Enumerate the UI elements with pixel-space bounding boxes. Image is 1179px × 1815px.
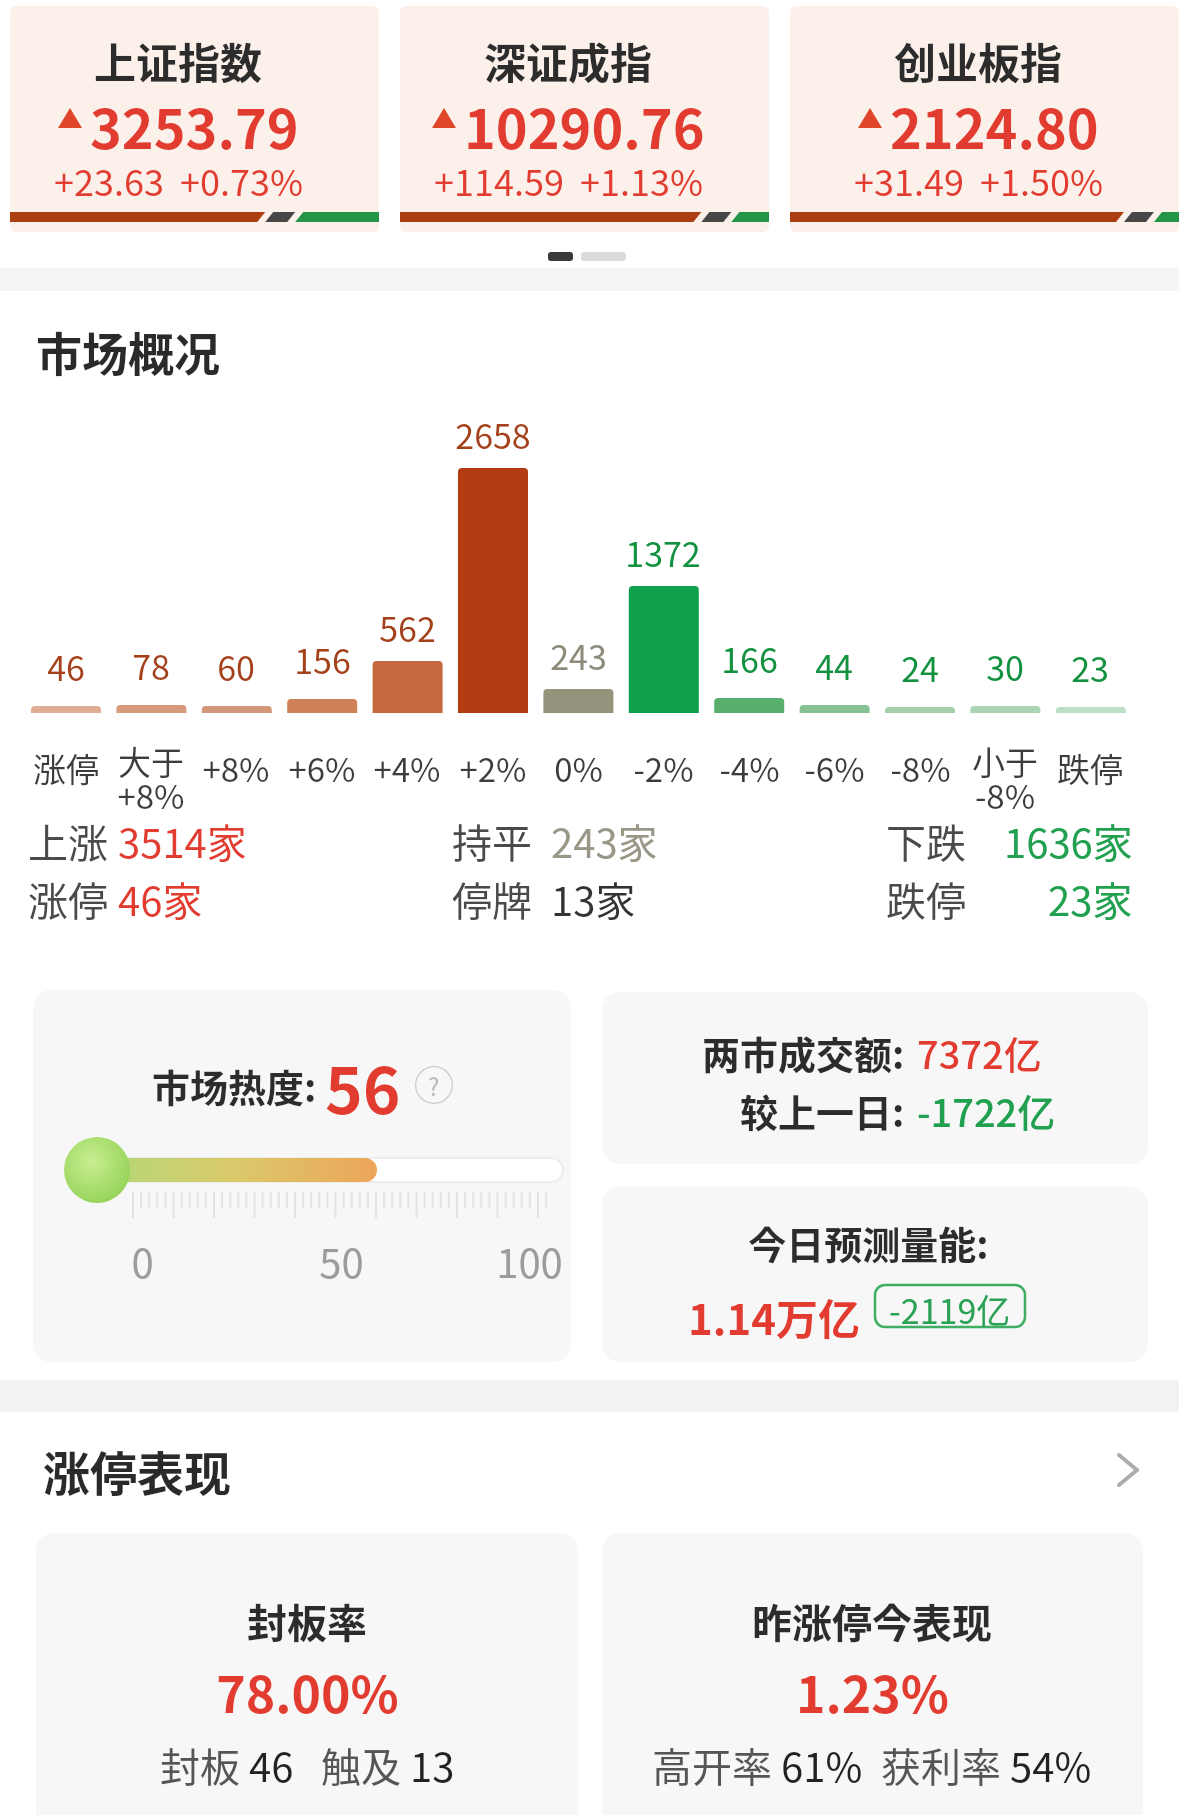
staticText: 1372: [625, 528, 701, 577]
staticText: 2658: [455, 410, 531, 459]
staticText: 2124.80: [890, 86, 1099, 150]
staticText: ?: [428, 1068, 440, 1103]
button[interactable]: 市场热度:: [33, 990, 571, 1362]
staticText: +4%: [373, 744, 441, 792]
staticText: -6%: [804, 744, 865, 792]
staticText: 今日预测量能:: [748, 1215, 989, 1270]
staticText: 1636家: [1004, 812, 1133, 870]
staticText: 0%: [554, 744, 603, 792]
staticText: 两市成交额:: [702, 1025, 905, 1080]
staticText: 3253.79: [90, 86, 299, 150]
staticText: 562: [379, 603, 436, 652]
staticText: 7372亿: [917, 1025, 1042, 1080]
staticText: 30: [986, 642, 1024, 691]
staticText: 0: [131, 1232, 154, 1290]
button[interactable]: [602, 1533, 1143, 1815]
staticText: 3514家: [118, 812, 247, 870]
staticText: 13家: [551, 870, 636, 928]
staticText: 24: [901, 643, 939, 692]
button[interactable]: [602, 1187, 1148, 1362]
staticText: 跌停: [886, 870, 966, 928]
staticText: 触及: [294, 1736, 410, 1794]
staticText: 下跌: [886, 812, 966, 870]
staticText: +114.59 +1.13%: [434, 154, 704, 206]
staticText: 50: [319, 1232, 364, 1290]
staticText: 涨停: [33, 744, 99, 792]
staticText: +8%: [202, 744, 270, 792]
staticText: 创业板指: [894, 30, 1063, 91]
staticText: 跌停: [1057, 744, 1123, 792]
staticText: 上涨: [28, 812, 108, 870]
staticText: 较上一日:: [740, 1083, 905, 1138]
staticText: 56: [325, 1040, 401, 1130]
staticText: 封板率: [247, 1592, 367, 1650]
staticText: 78: [132, 641, 170, 690]
staticText: +31.49 +1.50%: [854, 154, 1104, 206]
staticText: 61%: [781, 1736, 863, 1794]
button[interactable]: 创业板指: [790, 6, 1179, 232]
staticText: +6%: [288, 744, 356, 792]
staticText: 昨涨停今表现: [752, 1592, 992, 1650]
button[interactable]: 深证成指: [400, 6, 769, 232]
staticText: +23.63 +0.73%: [54, 154, 304, 206]
staticText: 156: [294, 635, 351, 684]
staticText: 23: [1071, 643, 1109, 692]
button[interactable]: 涨停表现: [0, 1435, 1179, 1505]
staticText: 100: [496, 1232, 563, 1290]
staticText: -2119亿: [889, 1285, 1011, 1327]
staticText: 市场热度:: [152, 1058, 325, 1113]
staticText: 166: [721, 634, 778, 683]
staticText: +2%: [459, 744, 527, 792]
button[interactable]: [602, 992, 1148, 1164]
staticText: -1722亿: [917, 1083, 1056, 1138]
staticText: 持平: [452, 812, 532, 870]
staticText: 46: [47, 642, 85, 691]
staticText: 小于 -8%: [972, 737, 1038, 819]
staticText: 60: [217, 642, 255, 691]
staticText: 13: [410, 1736, 455, 1794]
staticText: 46: [249, 1736, 294, 1794]
staticText: 上证指数: [94, 30, 263, 91]
button[interactable]: 上证指数: [10, 6, 379, 232]
staticText: 10290.76: [464, 86, 705, 150]
staticText: 大于 +8%: [117, 737, 185, 819]
staticText: 停牌: [452, 870, 532, 928]
staticText: 1.14万亿: [688, 1286, 860, 1347]
staticText: 78.00%: [216, 1655, 399, 1727]
staticText: -4%: [719, 744, 780, 792]
staticText: 243: [550, 631, 607, 680]
staticText: 封板: [160, 1736, 249, 1794]
staticText: 46家: [118, 870, 203, 928]
staticText: 23家: [1048, 870, 1133, 928]
staticText: 涨停: [28, 870, 108, 928]
staticText: 获利率: [863, 1736, 1010, 1794]
staticText: 44: [815, 641, 853, 690]
staticText: 243家: [551, 812, 658, 870]
staticText: 深证成指: [484, 30, 653, 91]
button[interactable]: [36, 1533, 578, 1815]
staticText: 54%: [1010, 1736, 1092, 1794]
staticText: 高开率: [652, 1736, 781, 1794]
staticText: 市场概况: [36, 318, 220, 385]
staticText: -2%: [633, 744, 694, 792]
staticText: 1.23%: [796, 1655, 949, 1727]
staticText: 涨停表现: [43, 1436, 231, 1504]
staticText: -8%: [890, 744, 951, 792]
